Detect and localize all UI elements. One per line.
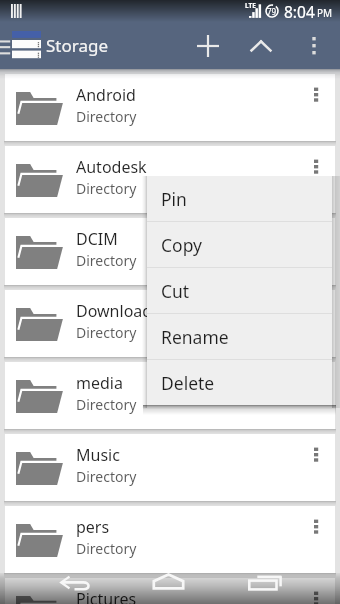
staticText: PM	[317, 6, 333, 20]
staticText: Directory	[76, 323, 137, 342]
staticText: Directory	[76, 395, 137, 414]
staticText: Rename	[161, 325, 229, 349]
button[interactable]: pers	[5, 506, 335, 573]
staticText: Directory	[76, 467, 137, 486]
staticText: Autodesk	[76, 156, 147, 178]
button[interactable]: More options	[300, 580, 330, 604]
staticText: 79	[267, 6, 277, 17]
staticText: Storage	[46, 34, 109, 57]
staticText: pers	[76, 516, 110, 538]
staticText: Music	[76, 444, 120, 466]
button[interactable]: Pin	[147, 176, 332, 222]
button[interactable]: Rename	[147, 314, 332, 360]
button[interactable]: Recent apps	[245, 573, 287, 595]
button[interactable]: Navigation drawer	[0, 30, 12, 62]
staticText: 8:04	[284, 1, 315, 22]
button[interactable]: Collapse	[243, 28, 279, 64]
button[interactable]: More options	[296, 28, 332, 64]
button[interactable]: Copy	[147, 222, 332, 268]
button[interactable]: Cut	[147, 268, 332, 314]
button[interactable]: Android	[5, 74, 335, 141]
staticText: Pin	[161, 187, 187, 211]
staticText: LTE	[245, 1, 256, 10]
staticText: Directory	[76, 107, 137, 126]
staticText: Directory	[76, 179, 137, 198]
button[interactable]: media	[5, 362, 335, 429]
button[interactable]: Add	[190, 28, 226, 64]
button[interactable]: More options	[300, 436, 330, 470]
staticText: Directory	[76, 251, 137, 270]
button[interactable]: Download	[5, 290, 335, 357]
button[interactable]: More options	[300, 508, 330, 542]
button[interactable]: More options	[300, 148, 330, 182]
button[interactable]: Back	[56, 573, 96, 595]
staticText: Download	[76, 300, 153, 322]
staticText: DCIM	[76, 228, 118, 250]
button[interactable]: Autodesk	[5, 146, 335, 213]
button[interactable]: Pictures	[5, 578, 335, 604]
button[interactable]: DCIM	[5, 218, 335, 285]
button[interactable]: Delete	[147, 360, 332, 405]
staticText: Cut	[161, 279, 190, 303]
staticText: Android	[76, 84, 136, 106]
staticText: Pictures	[76, 588, 137, 604]
staticText: Delete	[161, 371, 215, 395]
staticText: media	[76, 372, 123, 394]
staticText: Copy	[161, 233, 202, 257]
staticText: Directory	[76, 539, 137, 558]
button[interactable]: Music	[5, 434, 335, 501]
button[interactable]: Home	[150, 573, 190, 595]
button[interactable]: More options	[300, 76, 330, 110]
